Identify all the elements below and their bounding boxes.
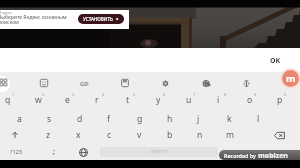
staticText: y bbox=[156, 94, 161, 106]
staticText: 7 bbox=[193, 92, 196, 98]
button[interactable]: f bbox=[95, 109, 125, 127]
staticText: h bbox=[167, 113, 173, 125]
button[interactable]: QWERTY bbox=[100, 147, 218, 157]
staticText: 5 bbox=[133, 92, 136, 98]
staticText: o bbox=[247, 94, 253, 106]
staticText: s bbox=[47, 113, 52, 125]
button[interactable]: Themes bbox=[199, 76, 213, 90]
button[interactable]: g bbox=[125, 109, 155, 127]
staticText: 0 bbox=[284, 92, 287, 98]
staticText: 4 bbox=[102, 92, 105, 98]
button[interactable]: o bbox=[235, 90, 265, 108]
staticText: g bbox=[137, 113, 143, 125]
button[interactable]: m bbox=[215, 126, 245, 144]
button[interactable]: w bbox=[23, 90, 53, 108]
staticText: 6 bbox=[163, 92, 166, 98]
button[interactable]: Clipboard bbox=[118, 76, 132, 90]
staticText: r bbox=[95, 94, 99, 106]
button[interactable]: OK bbox=[268, 55, 283, 67]
staticText: l bbox=[257, 113, 260, 125]
staticText: z bbox=[46, 129, 51, 141]
button[interactable]: z bbox=[33, 126, 63, 144]
button[interactable]: Comma bbox=[40, 144, 67, 160]
staticText: GIF bbox=[80, 80, 89, 87]
button[interactable]: e bbox=[53, 90, 83, 108]
staticText: 3 bbox=[72, 92, 75, 98]
staticText: t bbox=[126, 94, 130, 106]
staticText: k bbox=[227, 113, 232, 125]
staticText: d bbox=[77, 113, 83, 125]
button[interactable]: k bbox=[215, 109, 245, 127]
button[interactable]: i bbox=[205, 90, 235, 108]
staticText: q bbox=[5, 94, 11, 106]
staticText: m bbox=[226, 129, 235, 141]
button[interactable]: p bbox=[265, 90, 295, 108]
staticText: a bbox=[17, 113, 22, 125]
button[interactable]: q bbox=[0, 90, 23, 108]
staticText: 2 bbox=[42, 92, 45, 98]
staticText: b bbox=[167, 129, 173, 141]
staticText: f bbox=[107, 113, 110, 125]
button[interactable]: y bbox=[144, 90, 174, 108]
staticText: Выберите Яндекс основным bbox=[0, 14, 67, 21]
button[interactable]: j bbox=[185, 109, 215, 127]
staticText: x bbox=[76, 129, 81, 141]
staticText: QWERTY bbox=[151, 149, 168, 155]
button[interactable]: УСТАНОВИТЬ bbox=[78, 14, 124, 24]
button[interactable]: ?123 bbox=[1, 144, 31, 160]
button[interactable]: c bbox=[94, 126, 124, 144]
button[interactable]: Period bbox=[222, 144, 246, 160]
button[interactable]: n bbox=[185, 126, 215, 144]
staticText: v bbox=[137, 129, 142, 141]
button[interactable]: Text editing bbox=[239, 76, 253, 90]
button[interactable]: b bbox=[155, 126, 185, 144]
staticText: p bbox=[277, 94, 283, 106]
staticText: e bbox=[65, 94, 70, 106]
staticText: n bbox=[197, 129, 203, 141]
button[interactable]: d bbox=[65, 109, 95, 127]
button[interactable]: Apps bbox=[0, 76, 11, 90]
staticText: mobizen bbox=[258, 151, 288, 160]
button[interactable]: Яндекс bbox=[0, 10, 129, 29]
button[interactable]: u bbox=[174, 90, 204, 108]
button[interactable]: Settings bbox=[158, 76, 172, 90]
button[interactable]: Enter bbox=[252, 144, 298, 160]
staticText: c bbox=[107, 129, 112, 141]
staticText: ?123 bbox=[10, 148, 23, 156]
staticText: i bbox=[217, 94, 220, 106]
button[interactable]: Shift bbox=[0, 126, 30, 144]
staticText: OK bbox=[270, 56, 281, 66]
staticText: . bbox=[233, 147, 235, 157]
staticText: 1 bbox=[12, 92, 15, 98]
button[interactable]: a bbox=[5, 109, 35, 127]
button[interactable]: Stickers bbox=[37, 76, 51, 90]
button[interactable]: v bbox=[124, 126, 154, 144]
button[interactable]: s bbox=[35, 109, 65, 127]
button[interactable]: r bbox=[83, 90, 113, 108]
button[interactable]: x bbox=[63, 126, 93, 144]
button[interactable]: Change language bbox=[71, 144, 96, 160]
staticText: Яндекс bbox=[0, 10, 12, 15]
button[interactable]: Mobizen recorder bbox=[280, 68, 300, 89]
button[interactable]: Backspace bbox=[258, 126, 300, 144]
button[interactable]: GIF bbox=[77, 76, 92, 90]
staticText: w bbox=[35, 94, 42, 106]
button[interactable]: h bbox=[155, 109, 185, 127]
button[interactable]: t bbox=[114, 90, 144, 108]
staticText: j bbox=[197, 113, 200, 125]
staticText: УСТАНОВИТЬ bbox=[83, 16, 113, 22]
staticText: u bbox=[186, 94, 192, 106]
staticText: 9 bbox=[254, 92, 257, 98]
staticText: m bbox=[286, 72, 296, 85]
staticText: Recorded by bbox=[224, 152, 258, 159]
button[interactable]: l bbox=[245, 109, 275, 127]
staticText: поиском bbox=[0, 19, 19, 26]
staticText: 8 bbox=[224, 92, 227, 98]
